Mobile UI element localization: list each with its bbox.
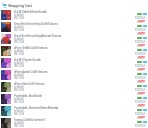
staticText: Shopping Cart: [8, 3, 32, 8]
staticText: in cart: [137, 56, 144, 60]
button[interactable]: Add to wishlist: [143, 73, 147, 75]
button[interactable]: Buy now: [137, 61, 142, 63]
staticText: by ArtistX: [14, 49, 24, 53]
staticText: dForce Assolin Outfit Textures: [14, 70, 48, 74]
staticText: Kuhl A1 Psycrim Bundle: [14, 58, 41, 62]
staticText: in cart: [137, 92, 144, 96]
staticText: Sins of the Demon King Outfit Textures: [14, 22, 58, 26]
staticText: in cart: [137, 104, 144, 108]
staticText: SKU 1234: [14, 124, 24, 128]
button[interactable]: Buy now: [137, 97, 142, 99]
button[interactable]: Psychedelia - Elemental Vision Materials: [0, 106, 148, 118]
button[interactable]: Remove from cart: [138, 116, 145, 118]
button[interactable]: Fantasy Outfit for Genesis 9: [0, 118, 148, 128]
staticText: by ArtistX: [14, 13, 24, 17]
button[interactable]: Kuhl A1 Psycrim Bundle: [0, 58, 148, 70]
staticText: in cart: [137, 80, 144, 84]
button[interactable]: Add to wishlist: [143, 49, 147, 51]
button[interactable]: Add to wishlist: [143, 61, 147, 63]
button[interactable]: Add to wishlist: [143, 85, 147, 87]
button[interactable]: Sins of the Demon King Outfit Textures: [0, 22, 148, 34]
staticText: dForce Noe Outfit Textures: [14, 82, 45, 86]
button[interactable]: Add to wishlist: [143, 97, 147, 99]
staticText: by ArtistX: [14, 61, 24, 65]
staticText: in cart: [137, 32, 144, 36]
button[interactable]: Remove from cart: [138, 104, 145, 106]
staticText: $19.95 US: [135, 124, 146, 128]
staticText: in cart: [137, 116, 144, 120]
button[interactable]: Add to wishlist: [143, 121, 147, 123]
button[interactable]: Remove from cart: [138, 44, 145, 46]
staticText: $19.95 US: [135, 88, 146, 92]
staticText: SKU 1234: [14, 16, 24, 20]
button[interactable]: Sins of the Demon King Alternate Texture…: [0, 34, 148, 46]
staticText: SKU 1234: [14, 76, 24, 80]
button[interactable]: dForce Noe Outfit Textures: [0, 82, 148, 94]
staticText: by ArtistX: [14, 121, 24, 125]
staticText: Psychedelia - Kira Bundle: [14, 94, 42, 98]
staticText: Fantasy Outfit for Genesis 9: [14, 118, 45, 122]
staticText: $19.95 US: [135, 76, 146, 80]
staticText: $19.95 US: [135, 40, 146, 44]
button[interactable]: Buy now: [137, 13, 142, 15]
button[interactable]: Buy now: [137, 49, 142, 51]
button[interactable]: Buy now: [137, 73, 142, 75]
button[interactable]: Remove from cart: [138, 92, 145, 94]
staticText: by ArtistX: [14, 25, 24, 29]
button[interactable]: Remove from cart: [138, 20, 145, 22]
button[interactable]: dForce TenBits Outfit Textures: [0, 46, 148, 58]
staticText: $19.95 US: [135, 28, 146, 32]
staticText: SKU 1234: [14, 64, 24, 68]
staticText: SKU 1234: [14, 100, 24, 104]
button[interactable]: Remove from cart: [138, 80, 145, 82]
button[interactable]: Remove from cart: [138, 56, 145, 58]
staticText: SKU 1234: [14, 52, 24, 56]
staticText: $19.95 US: [135, 16, 146, 20]
staticText: in cart: [137, 68, 144, 72]
button[interactable]: Buy now: [137, 37, 142, 39]
staticText: SKU 1234: [14, 112, 24, 116]
staticText: by ArtistX: [14, 37, 24, 41]
button[interactable]: Psychedelia - Kira Bundle: [0, 94, 148, 106]
staticText: SKU 1234: [14, 28, 24, 32]
button[interactable]: Add to wishlist: [143, 37, 147, 39]
staticText: by ArtistX: [14, 85, 24, 89]
staticText: Sins of the Demon King Alternate Texture…: [14, 34, 62, 38]
button[interactable]: Add to wishlist: [143, 13, 147, 15]
staticText: in cart: [137, 44, 144, 48]
staticText: $19.95 US: [135, 100, 146, 104]
button[interactable]: Add to wishlist: [143, 25, 147, 27]
staticText: $19.95 US: [135, 64, 146, 68]
staticText: by ArtistX: [14, 73, 24, 77]
staticText: $19.95 US: [135, 112, 146, 116]
staticText: dForce TenBits Outfit Textures: [14, 46, 48, 50]
staticText: $19.95 US: [135, 52, 146, 56]
staticText: Kuhl A1 Mesh Mecha Bundle: [14, 10, 47, 14]
button[interactable]: Remove from cart: [138, 32, 145, 34]
button[interactable]: Buy now: [137, 121, 142, 123]
staticText: in cart: [137, 20, 144, 24]
staticText: SKU 1234: [14, 40, 24, 44]
button[interactable]: Kuhl A1 Mesh Mecha Bundle: [0, 10, 148, 22]
button[interactable]: Add to wishlist: [143, 109, 147, 111]
staticText: by ArtistX: [14, 109, 24, 113]
staticText: Psychedelia - Elemental Vision Materials: [14, 106, 59, 110]
button[interactable]: Buy now: [137, 25, 142, 27]
staticText: by ArtistX: [14, 97, 24, 101]
other: Cart: [2, 3, 7, 8]
staticText: SKU 1234: [14, 88, 24, 92]
button[interactable]: Buy now: [137, 85, 142, 87]
button[interactable]: dForce Assolin Outfit Textures: [0, 70, 148, 82]
button[interactable]: Buy now: [137, 109, 142, 111]
button[interactable]: Remove from cart: [138, 68, 145, 70]
